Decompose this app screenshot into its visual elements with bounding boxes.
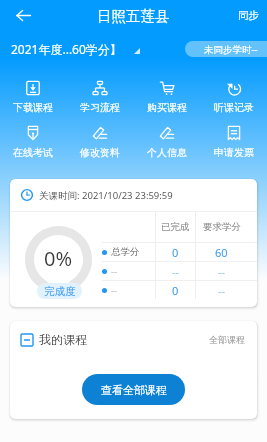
button[interactable]: 修改资料 <box>66 126 133 159</box>
staticText: 未同步学时-- <box>204 43 258 56</box>
staticText: 学习流程 <box>80 101 120 114</box>
button[interactable]: 全部课程 <box>205 330 249 349</box>
staticText: -- <box>111 284 117 296</box>
staticText: 全部课程 <box>209 334 245 345</box>
staticText: 在线考试 <box>13 146 53 159</box>
staticText: 已完成 <box>161 221 190 233</box>
button[interactable]: 申请发票 <box>200 126 267 159</box>
staticText: 申请发票 <box>214 146 254 159</box>
staticText: 修改资料 <box>80 146 120 159</box>
staticText: 关课时间: 2021/10/23 23:59:59 <box>39 189 173 202</box>
staticText: 日照五莲县 <box>97 7 170 25</box>
staticText: 同步 <box>238 9 259 22</box>
staticText: 2021年度...60学分】 <box>11 41 122 57</box>
button[interactable]: 未同步学时-- <box>185 41 267 57</box>
button[interactable]: 在线考试 <box>0 126 66 159</box>
button[interactable]: 2021年度...60学分】 <box>0 38 126 60</box>
staticText: 个人信息 <box>147 146 187 159</box>
button[interactable]: 购买课程 <box>133 81 200 114</box>
staticText: 查看全部课程 <box>101 383 167 397</box>
staticText: -- <box>218 264 226 279</box>
button[interactable]: 下载课程 <box>0 81 66 114</box>
staticText: 购买课程 <box>147 101 187 114</box>
staticText: 下载课程 <box>13 101 53 114</box>
button[interactable]: Back <box>8 0 38 30</box>
staticText: -- <box>111 265 117 277</box>
staticText: 0% <box>44 245 73 272</box>
staticText: -- <box>218 283 226 298</box>
staticText: 听课记录 <box>214 101 254 114</box>
staticText: -- <box>172 264 180 279</box>
staticText: 60 <box>215 245 228 260</box>
staticText: 0 <box>172 245 179 260</box>
staticText: 总学分 <box>111 246 140 258</box>
staticText: 要求学分 <box>203 221 241 233</box>
button[interactable]: 个人信息 <box>133 126 200 159</box>
button[interactable]: 同步 <box>230 5 267 26</box>
staticText: 我的课程 <box>39 332 87 347</box>
button[interactable]: 学习流程 <box>66 81 133 114</box>
staticText: 完成度 <box>44 285 76 298</box>
staticText: 0 <box>172 283 179 298</box>
button[interactable]: 查看全部课程 <box>82 374 185 405</box>
button[interactable]: 听课记录 <box>200 81 267 114</box>
